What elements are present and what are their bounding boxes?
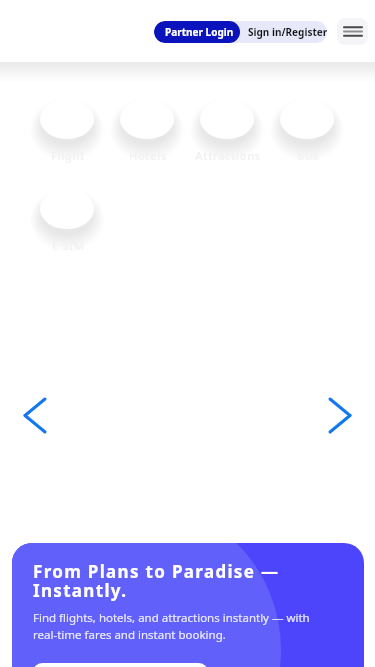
- button[interactable]: Flight: [30, 89, 104, 165]
- staticText: Attractions: [195, 148, 261, 163]
- button[interactable]: Sign in/Register: [248, 21, 327, 43]
- button[interactable]: Attractions: [190, 89, 264, 165]
- staticText: E SIM: [52, 238, 85, 253]
- staticText: From Plans to Paradise — Instantly.: [33, 560, 280, 602]
- button[interactable]: Next: [318, 393, 362, 437]
- button[interactable]: Bus: [270, 89, 344, 165]
- staticText: Find flights, hotels, and attractions in…: [33, 610, 310, 643]
- button[interactable]: From Plans to Paradise — Instantly.: [12, 543, 364, 667]
- button[interactable]: E SIM: [30, 179, 104, 255]
- staticText: Bus: [297, 148, 319, 163]
- staticText: Partner Login: [165, 25, 234, 39]
- staticText: Hotels: [129, 148, 167, 163]
- staticText: Flight: [51, 148, 85, 163]
- button[interactable]: Partner Login: [154, 21, 240, 43]
- button[interactable]: Menu: [337, 18, 368, 45]
- button[interactable]: Previous: [13, 393, 57, 437]
- button[interactable]: Hotels: [110, 89, 184, 165]
- staticText: Sign in/Register: [248, 25, 327, 39]
- button[interactable]: Start Your Journey: [33, 663, 208, 667]
